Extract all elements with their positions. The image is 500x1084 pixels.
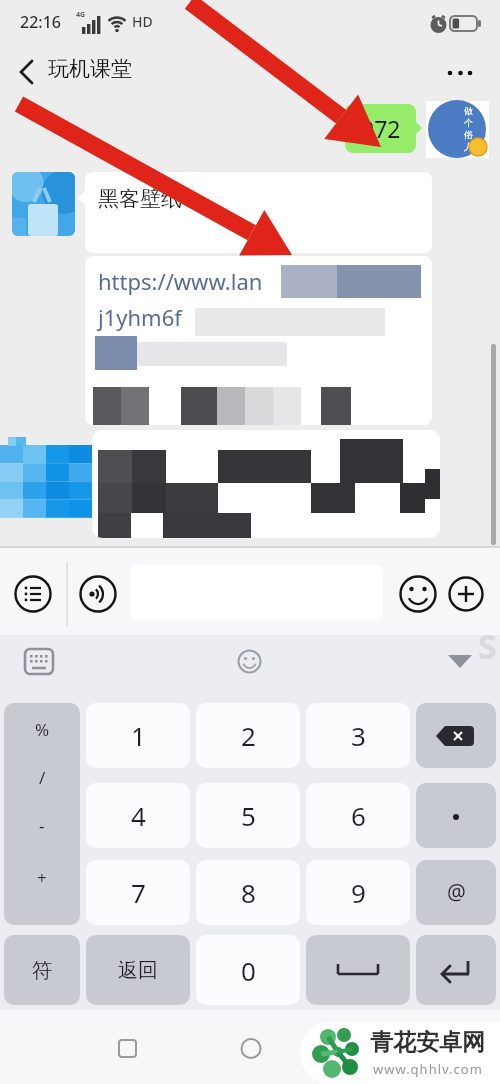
button[interactable] — [306, 935, 410, 1005]
button[interactable] — [24, 648, 54, 675]
button[interactable] — [399, 575, 437, 613]
button[interactable]: 3 — [306, 703, 410, 768]
staticText: @ — [447, 878, 466, 907]
button[interactable]: 1 — [86, 703, 190, 768]
button[interactable]: 6 — [306, 783, 410, 848]
button[interactable]: 符 — [4, 935, 80, 1005]
button[interactable]: 4 — [86, 783, 190, 848]
staticText: 3 — [351, 718, 366, 753]
staticText: + — [37, 866, 47, 889]
staticText: 6 — [351, 798, 366, 833]
staticText: 符 — [32, 958, 52, 983]
staticText: 做 个 俗 人 — [464, 105, 473, 153]
staticText: 7 — [131, 875, 146, 910]
staticText: j1yhm6f — [98, 302, 182, 332]
button[interactable]: % — [4, 703, 80, 925]
staticText: 1 — [131, 718, 146, 753]
staticText: 4G — [76, 10, 86, 20]
staticText: 返回 — [118, 958, 158, 983]
button[interactable]: @ — [416, 860, 496, 925]
button[interactable]: 2 — [196, 703, 300, 768]
staticText: 5 — [241, 798, 256, 833]
staticText: 9 — [351, 875, 366, 910]
button[interactable] — [236, 1035, 266, 1065]
button[interactable]: 0 — [196, 935, 300, 1005]
button[interactable] — [416, 703, 496, 768]
button[interactable]: 返回 — [86, 935, 190, 1005]
staticText: % — [35, 718, 50, 741]
button[interactable] — [416, 783, 496, 848]
button[interactable] — [416, 935, 496, 1005]
button[interactable]: 8 — [196, 860, 300, 925]
staticText: 2 — [241, 718, 256, 753]
staticText: HD — [132, 12, 153, 31]
button[interactable] — [79, 575, 117, 613]
button[interactable] — [440, 61, 480, 85]
button[interactable] — [16, 59, 40, 85]
staticText: / — [39, 766, 46, 789]
button[interactable] — [237, 649, 262, 674]
button[interactable]: 7 — [86, 860, 190, 925]
button[interactable] — [14, 575, 52, 613]
button[interactable]: 9 — [306, 860, 410, 925]
button[interactable]: 972 — [345, 104, 416, 153]
staticText: https://www.lan — [98, 266, 263, 296]
staticText: 972 — [361, 113, 401, 144]
staticText: 玩机课堂 — [48, 56, 132, 82]
button[interactable] — [112, 1035, 142, 1065]
staticText: 4 — [131, 798, 146, 833]
staticText: 22:16 — [20, 11, 61, 33]
staticText: 黑客壁纸： — [98, 186, 203, 212]
staticText: 青花安卓网 — [370, 1028, 485, 1057]
button[interactable] — [448, 576, 484, 612]
button[interactable] — [446, 653, 474, 671]
staticText: S — [478, 623, 497, 669]
staticText: 0 — [241, 953, 256, 988]
staticText: - — [39, 814, 45, 837]
staticText: www.qhhlv.com — [373, 1060, 483, 1078]
staticText: 8 — [241, 875, 256, 910]
button[interactable]: 5 — [196, 783, 300, 848]
